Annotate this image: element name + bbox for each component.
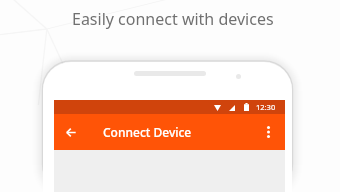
- staticText: Easily connect with devices: [72, 8, 274, 30]
- button[interactable]: More options: [257, 121, 279, 143]
- staticText: 12:30: [256, 102, 276, 112]
- staticText: Connect Device: [103, 124, 192, 140]
- button[interactable]: Navigate up: [60, 121, 82, 143]
